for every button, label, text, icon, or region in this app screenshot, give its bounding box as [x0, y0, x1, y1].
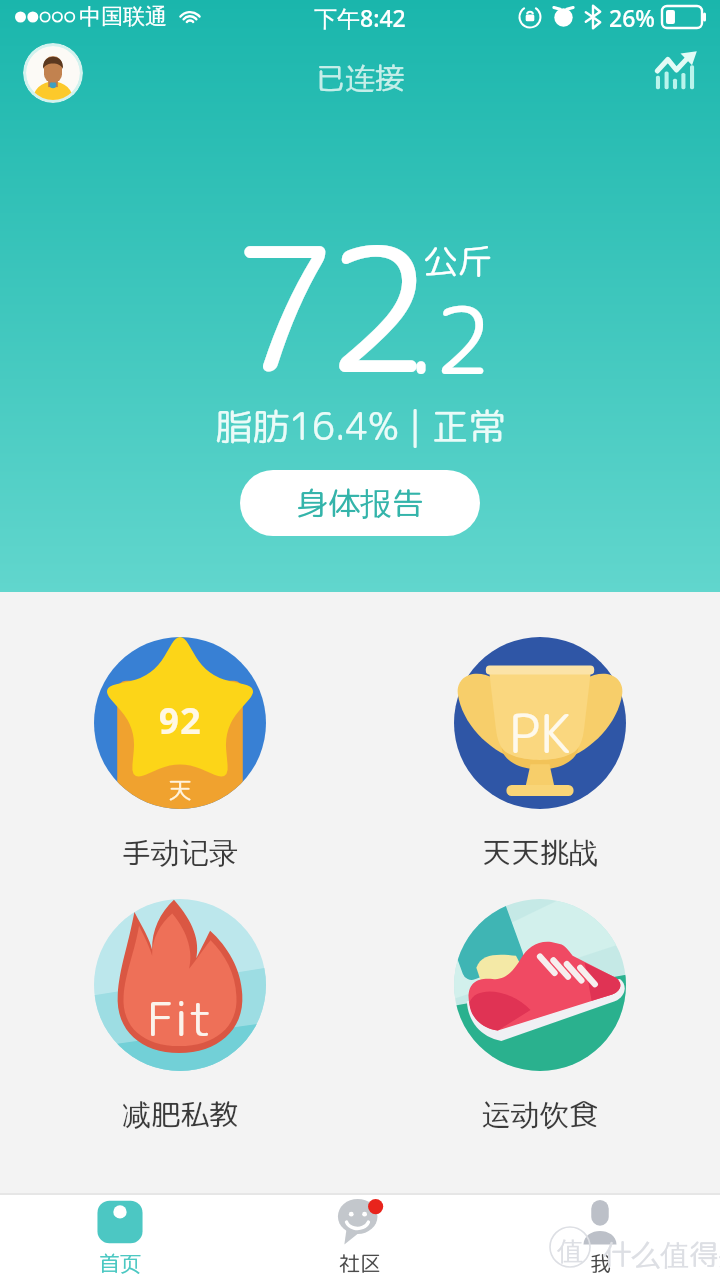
button[interactable]: 社区 [240, 1195, 480, 1280]
staticText: 下午8:42 [314, 2, 406, 33]
staticText: 我 [590, 1248, 611, 1277]
button[interactable]: PK [360, 637, 720, 872]
staticText: 已连接 [315, 57, 405, 99]
staticText: 手动记录 [122, 832, 239, 872]
staticText: 天天挑战 [482, 832, 599, 872]
button[interactable]: Fit [0, 899, 360, 1134]
button[interactable]: 身体报告 [240, 470, 480, 536]
button[interactable]: Profile [23, 43, 83, 103]
staticText: 身体报告 [296, 481, 425, 526]
staticText: 社区 [339, 1248, 381, 1277]
staticText: PK [509, 697, 571, 770]
staticText: 天 [168, 773, 192, 806]
button[interactable]: 首页 [0, 1195, 240, 1280]
staticText: 值 [557, 1235, 583, 1268]
staticText: 7 [231, 187, 338, 427]
staticText: 中国联通 [79, 3, 167, 31]
staticText: 92 [158, 696, 202, 745]
button[interactable]: 运动饮食 [360, 899, 720, 1134]
button[interactable]: 92 [0, 637, 360, 872]
staticText: Fit [147, 985, 213, 1051]
staticText: 2 [325, 187, 432, 427]
staticText: 运动饮食 [482, 1094, 599, 1134]
button[interactable]: 我 [480, 1195, 720, 1280]
button[interactable]: Statistics [651, 46, 699, 94]
staticText: 脂肪16.4% | 正常 [215, 400, 506, 452]
staticText: .2 [408, 275, 492, 403]
staticText: 减肥私教 [122, 1094, 239, 1134]
staticText: 首页 [99, 1248, 141, 1277]
staticText: 公斤 [423, 236, 494, 285]
staticText: 26% [609, 2, 655, 33]
staticText: 什么值得买 [602, 1234, 720, 1274]
